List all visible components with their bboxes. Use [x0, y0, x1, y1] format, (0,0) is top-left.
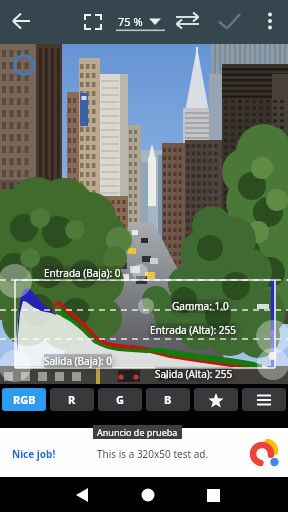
staticText: RGB — [13, 392, 36, 407]
staticText: Salida (Alta): 255 — [155, 367, 233, 381]
button[interactable]: Nice job! — [0, 428, 288, 477]
button[interactable] — [194, 480, 234, 510]
button[interactable]: B — [146, 388, 190, 411]
staticText: Entrada (Baja): 0 — [44, 266, 121, 280]
staticText: Salida (Baja): 0 — [44, 354, 112, 368]
button[interactable]: G — [98, 388, 142, 411]
staticText: R — [68, 392, 76, 407]
button[interactable] — [168, 0, 208, 44]
button[interactable] — [250, 0, 288, 44]
staticText: This is a 320x50 test ad. — [97, 447, 209, 461]
staticText: Entrada (Alta): 255 — [150, 323, 236, 337]
button[interactable] — [62, 480, 102, 510]
staticText: Nice job! — [12, 447, 56, 461]
staticText: Anuncio de prueba — [97, 426, 178, 438]
button[interactable] — [194, 388, 238, 411]
button[interactable] — [0, 0, 44, 44]
button[interactable] — [128, 480, 168, 510]
button[interactable]: R — [50, 388, 94, 411]
staticText: G — [116, 392, 124, 407]
button[interactable] — [242, 388, 286, 411]
button[interactable] — [72, 0, 112, 44]
button[interactable]: RGB — [2, 388, 46, 411]
staticText: Gamma: 1.0 — [172, 299, 229, 313]
staticText: 75 % — [118, 14, 143, 29]
button[interactable]: 75 % — [112, 0, 168, 44]
staticText: B — [164, 392, 172, 407]
